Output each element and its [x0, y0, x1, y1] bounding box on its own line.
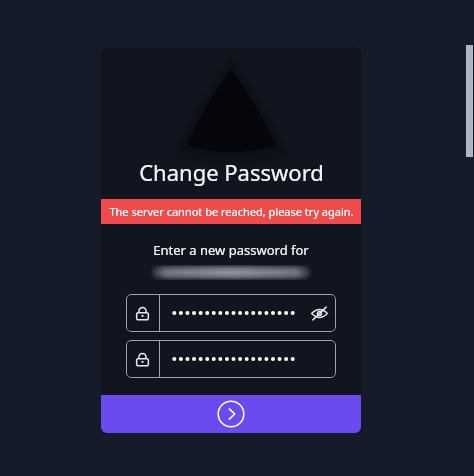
staticText: Enter a new password for	[153, 241, 309, 259]
button[interactable]: Hide password	[126, 294, 336, 332]
button[interactable]: Submit	[101, 395, 361, 433]
button[interactable]: Hide password	[302, 294, 336, 332]
button[interactable]	[126, 340, 336, 378]
staticText: Change Password	[139, 157, 324, 187]
staticText: The server cannot be reached, please try…	[109, 204, 354, 219]
